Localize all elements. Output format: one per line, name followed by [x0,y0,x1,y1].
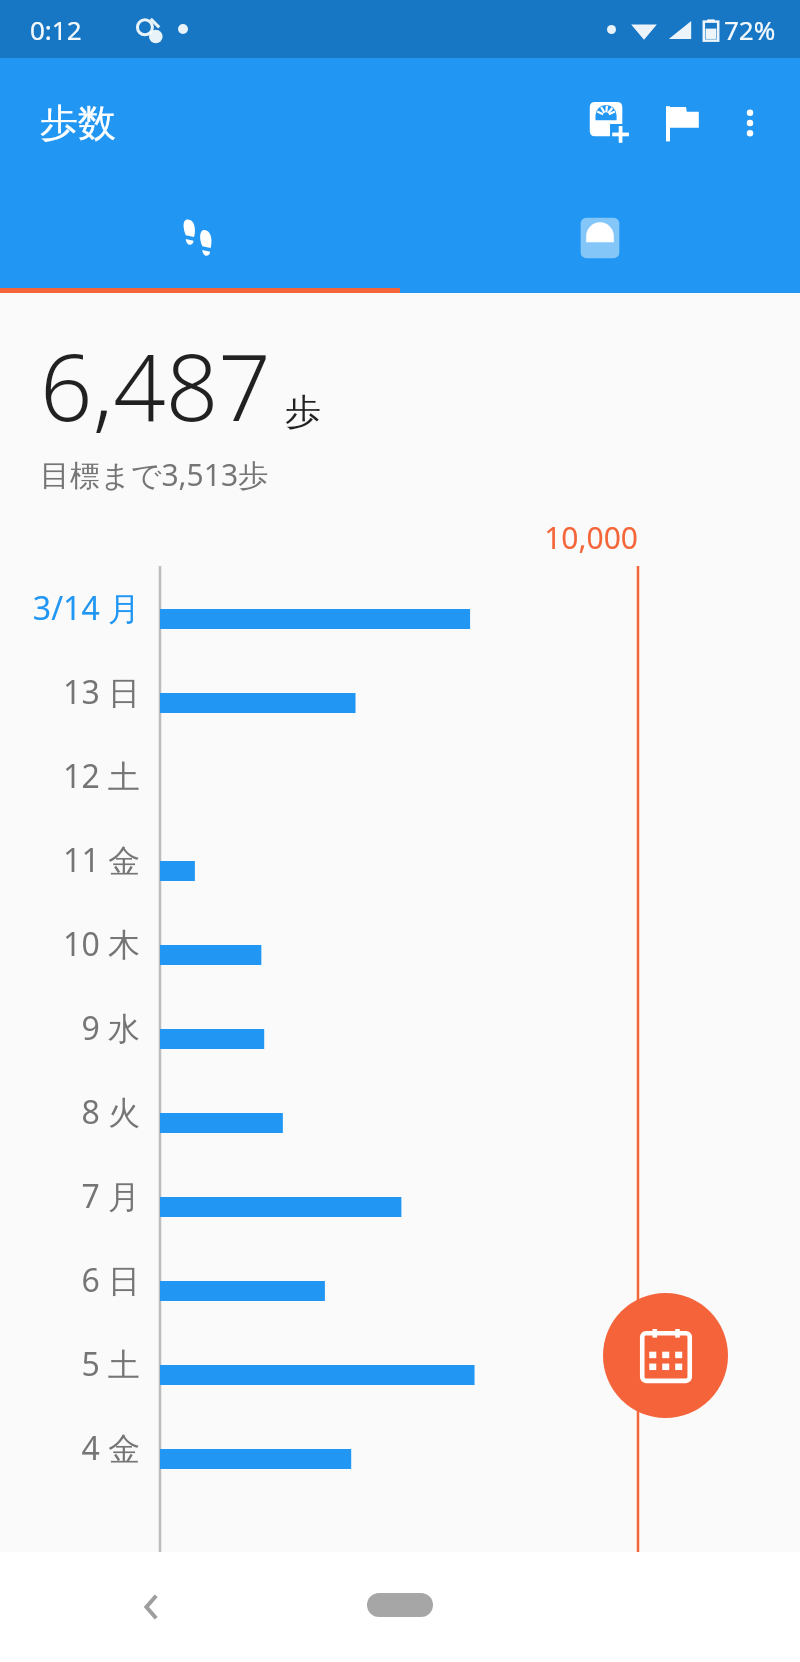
staticText: 6,487 [40,323,271,448]
staticText: 4 金 [0,1426,140,1470]
staticText: 6 日 [0,1258,140,1302]
button[interactable]: Goal [646,87,718,159]
staticText: 7 月 [0,1174,140,1218]
staticText: 72% [724,12,776,47]
staticText: 目標まで3,513歩 [40,454,269,495]
button[interactable]: Weight [400,188,800,288]
button[interactable]: Add weight [574,87,646,159]
staticText: 10 木 [0,922,140,966]
button[interactable]: Back [120,1575,184,1639]
staticText: 10,000 [0,517,638,558]
staticText: 11 金 [0,838,140,882]
staticText: 12 土 [0,754,140,798]
button[interactable]: Select date [603,1293,728,1418]
button[interactable]: More options [718,91,782,155]
button[interactable]: Home [367,1593,433,1617]
staticText: 0:12 [30,12,82,47]
staticText: 8 火 [0,1090,140,1134]
button[interactable]: Steps [0,188,400,288]
staticText: 3/14 月 [0,586,140,630]
staticText: 歩 [285,389,321,434]
staticText: 歩数 [40,99,116,147]
staticText: 9 水 [0,1006,140,1050]
staticText: 5 土 [0,1342,140,1386]
staticText: 13 日 [0,670,140,714]
